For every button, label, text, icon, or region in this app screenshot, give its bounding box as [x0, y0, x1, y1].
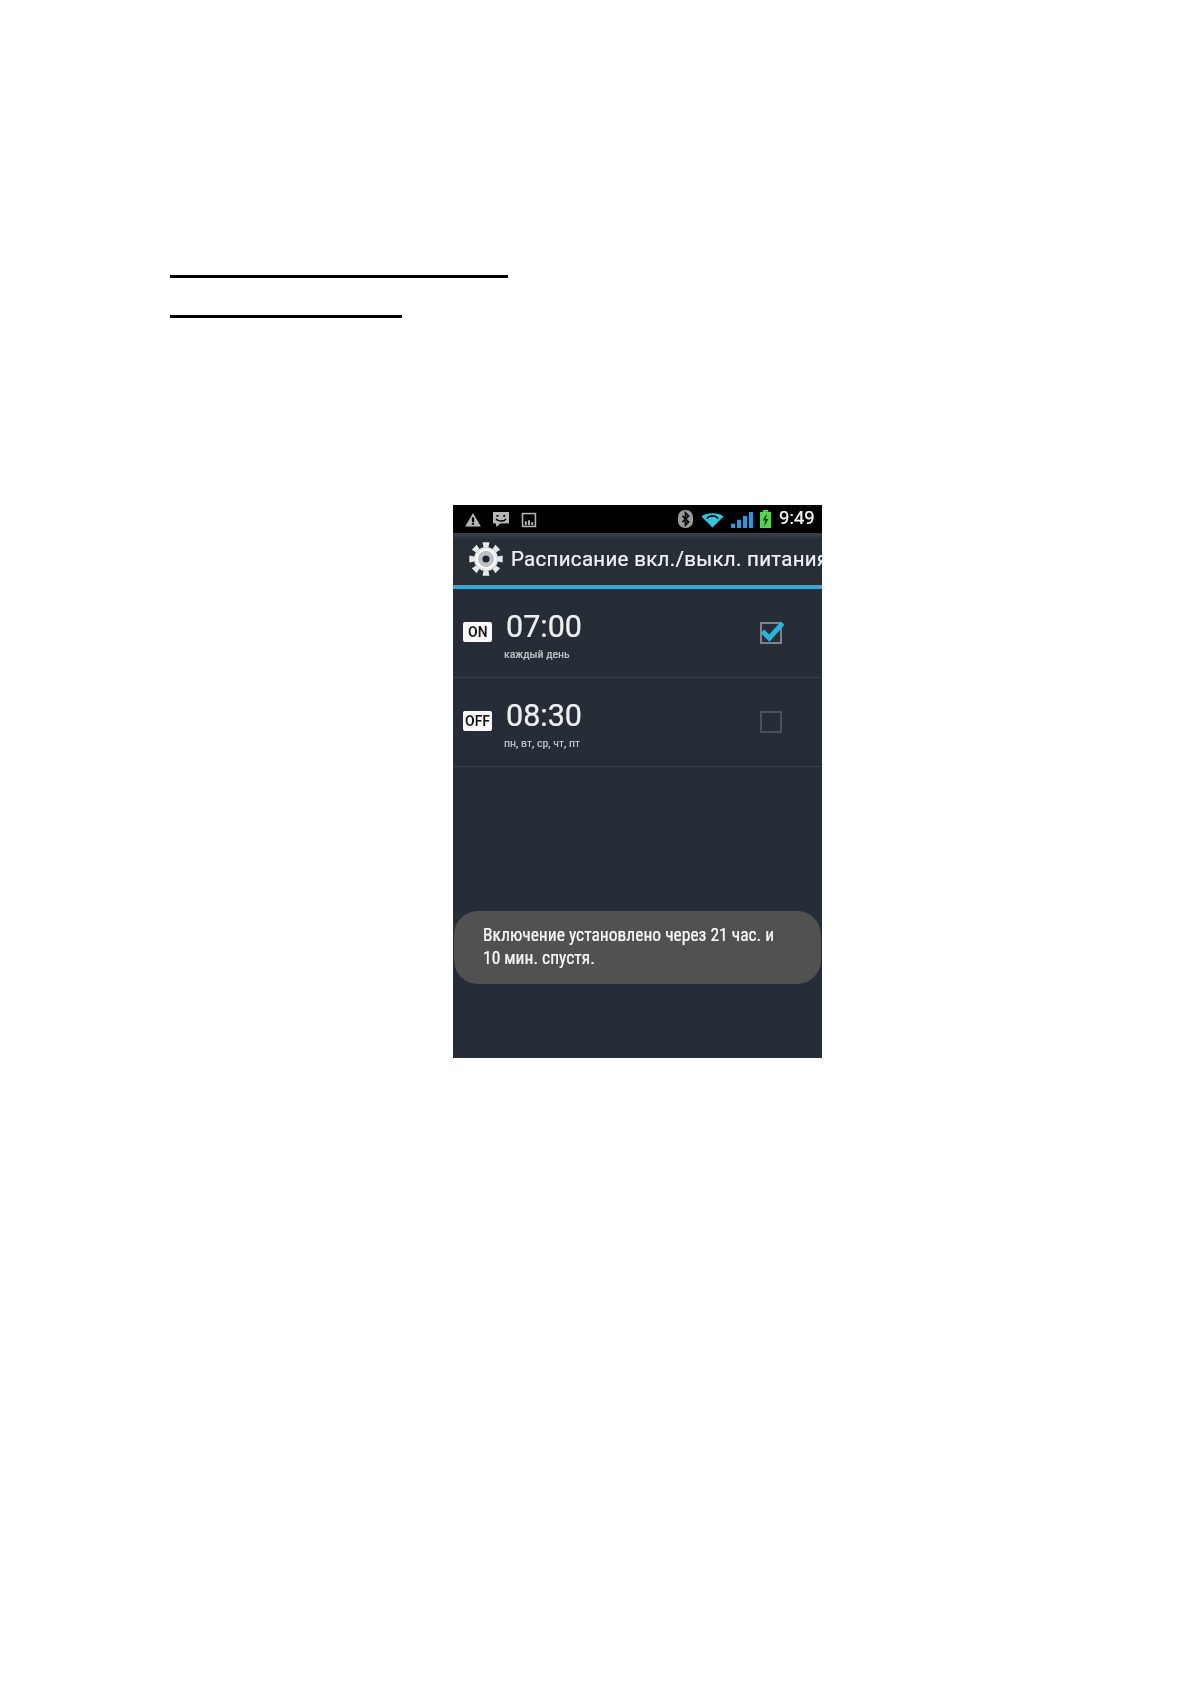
button[interactable]: Settings [453, 533, 822, 585]
staticText: 08:30 [506, 698, 582, 734]
button[interactable]: ON [453, 589, 822, 677]
other: Screenshot captured [522, 513, 536, 527]
staticText: ON [468, 624, 488, 640]
other: Settings [469, 542, 503, 576]
staticText: OFF [465, 713, 491, 729]
other: Warning [465, 512, 481, 527]
button[interactable]: Disabled [745, 696, 797, 748]
other: Battery charging [760, 510, 771, 528]
staticText: Включение установлено через 21 час. и 10… [483, 925, 783, 968]
staticText: пн, вт, ср, чт, пт [504, 736, 580, 750]
other: Mobile signal [731, 512, 753, 528]
button[interactable]: OFF [453, 678, 822, 766]
other: New message [493, 512, 509, 527]
other: Wi-Fi signal [701, 512, 724, 528]
staticText: 07:00 [506, 609, 582, 645]
staticText: каждый день [504, 647, 570, 661]
other: Bluetooth on [678, 510, 693, 528]
button[interactable]: Enabled [745, 607, 797, 659]
staticText: Расписание вкл./выкл. питания [511, 547, 822, 571]
staticText: 9:49 [779, 507, 815, 529]
